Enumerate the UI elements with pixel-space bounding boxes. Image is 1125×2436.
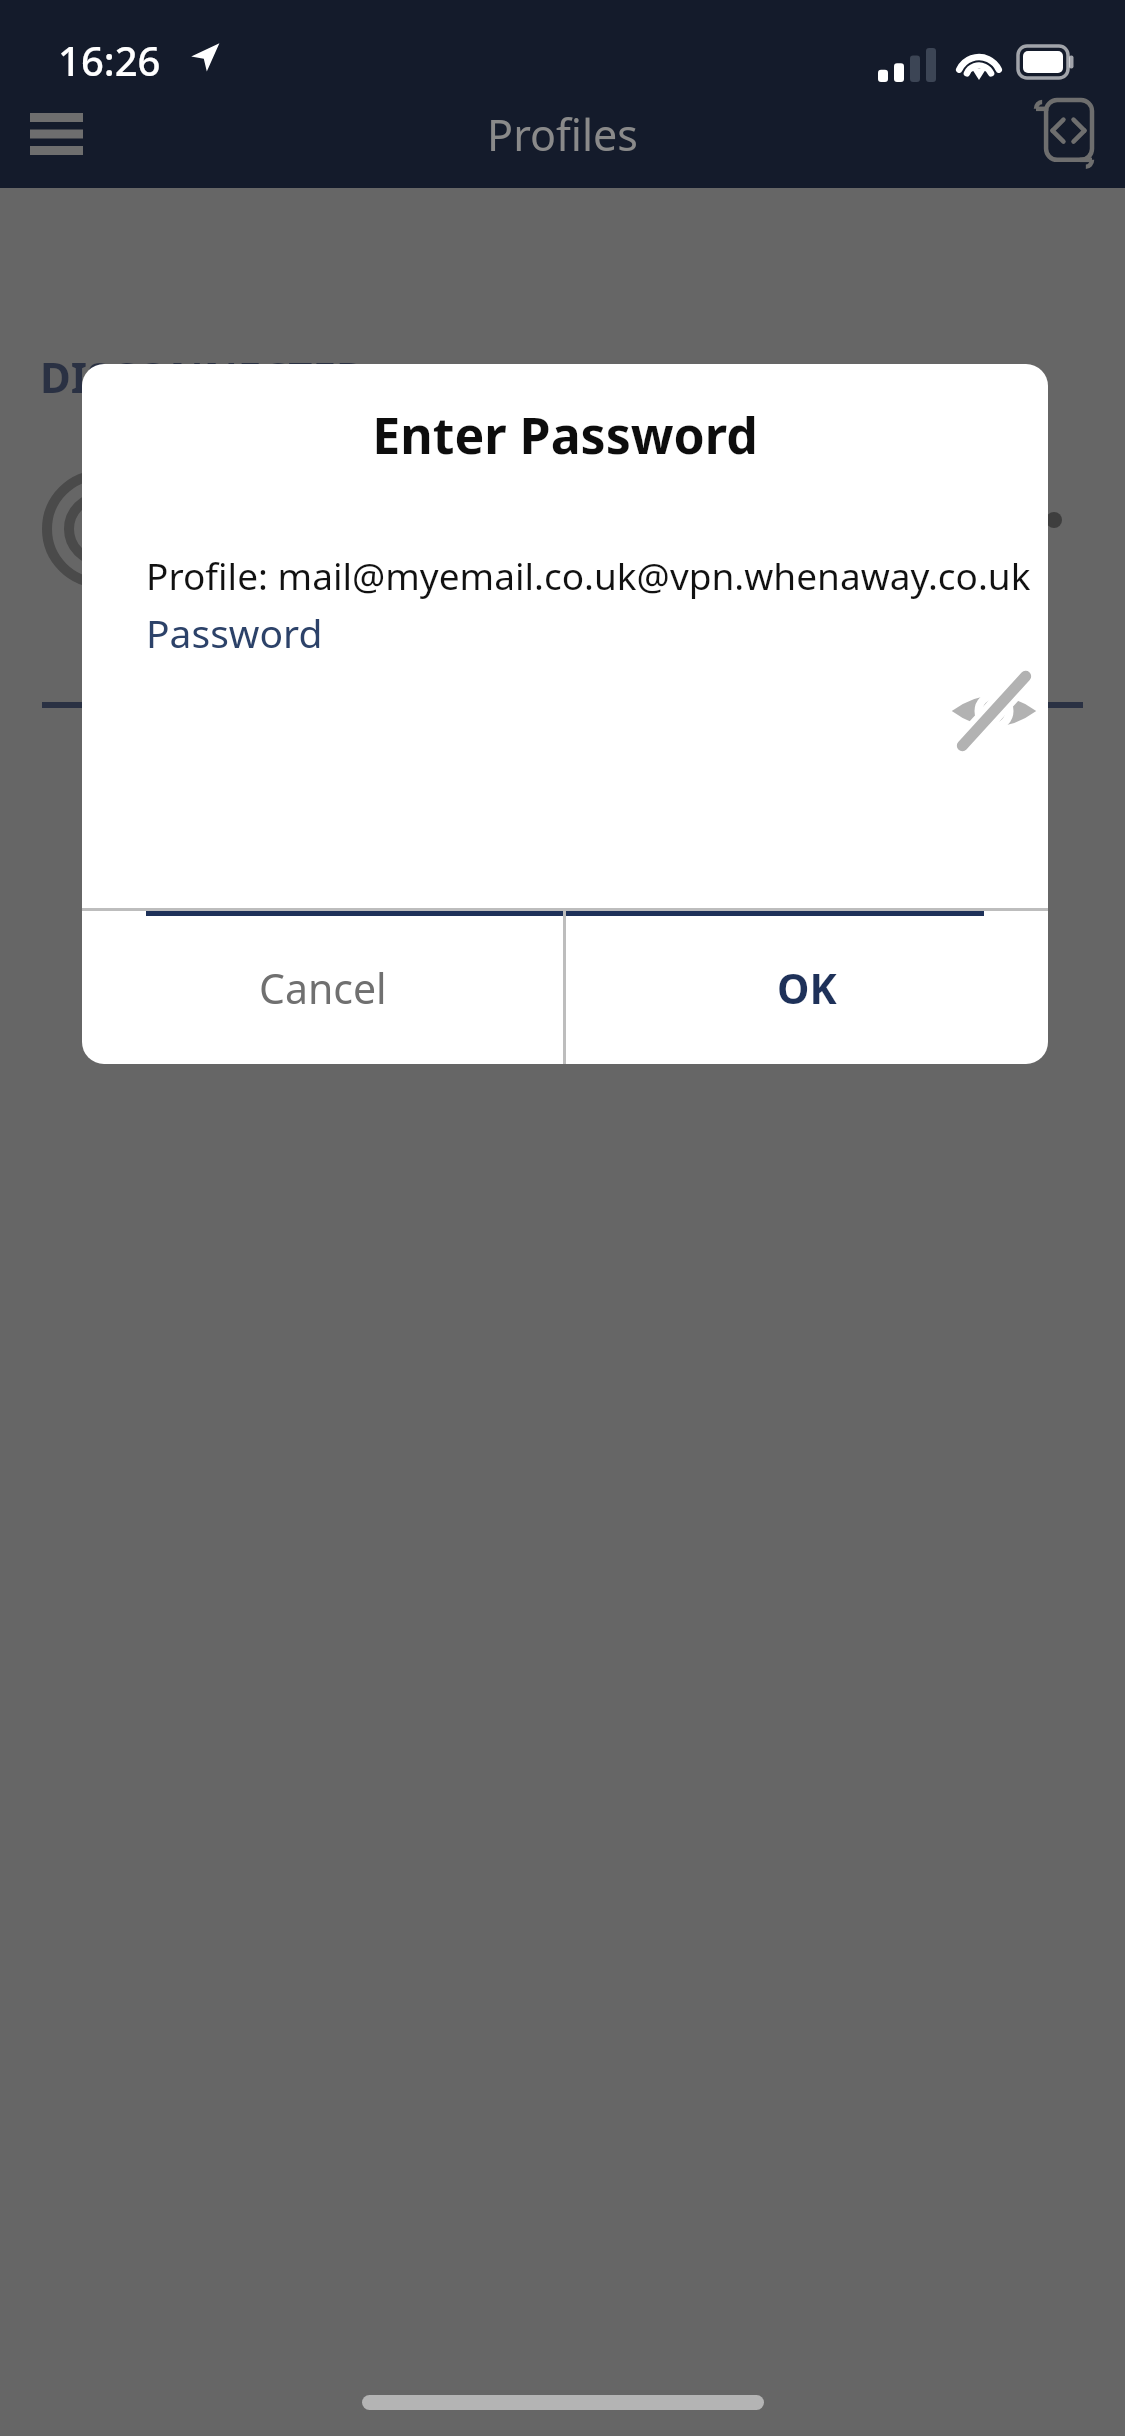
staticText: DISCONNECTED bbox=[40, 348, 367, 405]
button[interactable]: Menu bbox=[14, 92, 98, 176]
staticText: Profiles bbox=[487, 105, 638, 164]
staticText: 16:26 bbox=[58, 33, 161, 87]
button[interactable]: OK bbox=[566, 911, 1048, 1064]
staticText: Enter Password bbox=[372, 401, 758, 469]
button[interactable]: Cancel bbox=[82, 911, 563, 1064]
staticText: OK bbox=[777, 960, 837, 1016]
staticText: Password bbox=[146, 606, 323, 659]
staticText: Profile: mail@myemail.co.uk@vpn.whenaway… bbox=[146, 550, 1031, 600]
staticText: Cancel bbox=[259, 960, 387, 1016]
button[interactable]: Import profile bbox=[1021, 91, 1107, 177]
button[interactable]: Show password bbox=[938, 664, 1048, 758]
